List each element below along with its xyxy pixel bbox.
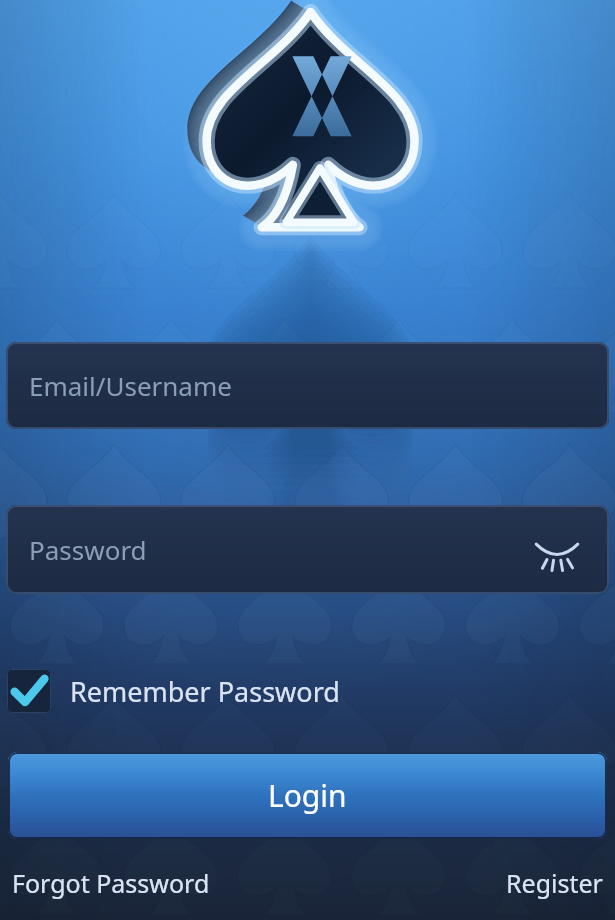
button[interactable]: Register bbox=[502, 862, 607, 904]
staticText: Register bbox=[506, 866, 603, 900]
staticText: Forgot Password bbox=[12, 866, 210, 900]
button[interactable]: Password bbox=[6, 505, 609, 594]
button[interactable]: Remember Password bbox=[7, 662, 340, 720]
staticText: Remember Password bbox=[70, 673, 340, 710]
button[interactable]: Forgot Password bbox=[8, 862, 214, 904]
staticText: Login bbox=[268, 775, 347, 816]
staticText: Password bbox=[29, 532, 147, 567]
button[interactable]: Email/Username bbox=[6, 342, 609, 429]
staticText: Email/Username bbox=[29, 368, 232, 403]
other: Show password bbox=[531, 524, 583, 576]
button[interactable]: Login bbox=[8, 752, 607, 839]
